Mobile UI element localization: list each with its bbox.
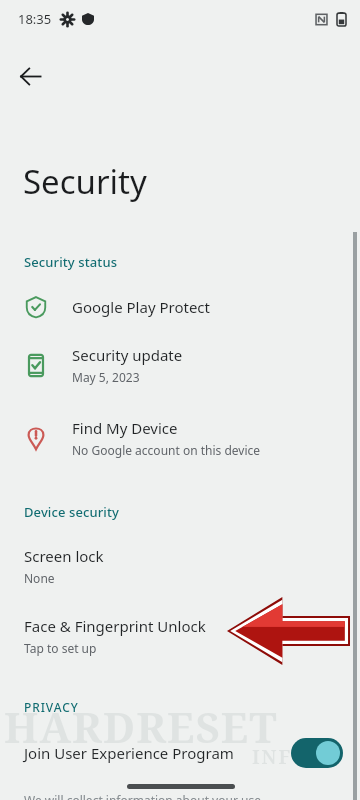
staticText: Security update [72, 345, 183, 365]
button[interactable]: Find My Device [0, 410, 360, 466]
staticText: Face & Fingerprint Unlock [24, 616, 206, 636]
button[interactable]: Face & Fingerprint Unlock [0, 608, 360, 664]
staticText: Find My Device [72, 418, 178, 438]
staticText: Device security [24, 503, 119, 521]
staticText: No Google account on this device [72, 442, 261, 458]
staticText: PRIVACY [24, 699, 79, 715]
staticText: INFO [252, 744, 310, 770]
staticText: Screen lock [24, 546, 104, 566]
button[interactable]: Google Play Protect [0, 283, 360, 331]
staticText: None [24, 570, 55, 586]
staticText: Security status [24, 253, 118, 271]
button[interactable]: Security update [0, 337, 360, 393]
staticText: Google Play Protect [72, 297, 210, 317]
staticText: May 5, 2023 [72, 369, 140, 385]
button[interactable]: Join User Experience Program [0, 730, 360, 776]
button[interactable]: Back [11, 57, 49, 95]
staticText: Join User Experience Program [24, 743, 291, 763]
staticText: Security [23, 159, 147, 204]
button[interactable]: Join User Experience Program toggle [291, 738, 343, 768]
button[interactable]: Screen lock [0, 538, 360, 594]
staticText: HARDRESET [4, 698, 278, 755]
staticText: Tap to set up [24, 640, 97, 656]
staticText: We will collect information about your u… [24, 792, 261, 800]
staticText: 18:35 [18, 10, 52, 28]
